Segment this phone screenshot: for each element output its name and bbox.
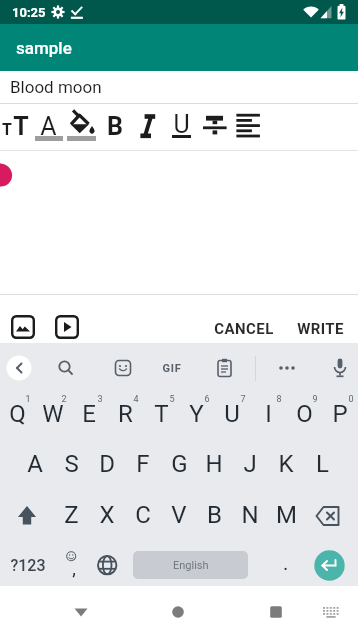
button[interactable] bbox=[236, 112, 261, 138]
button[interactable] bbox=[268, 604, 284, 620]
button[interactable]: English bbox=[133, 551, 248, 579]
button[interactable]: J bbox=[233, 441, 267, 487]
button[interactable]: G bbox=[162, 441, 196, 487]
staticText: A bbox=[27, 450, 43, 478]
staticText: 4 bbox=[133, 394, 139, 405]
staticText: 2 bbox=[61, 394, 67, 405]
staticText: A bbox=[40, 112, 57, 139]
staticText: GIF bbox=[162, 362, 182, 375]
staticText: 0 bbox=[348, 394, 354, 405]
button[interactable]: Z bbox=[54, 492, 88, 538]
button[interactable]: GIF bbox=[158, 359, 185, 377]
button[interactable] bbox=[9, 498, 45, 534]
button[interactable] bbox=[314, 550, 345, 581]
staticText: E bbox=[82, 400, 96, 428]
staticText: I bbox=[265, 400, 272, 428]
staticText: CANCEL bbox=[214, 320, 274, 338]
button[interactable]: W bbox=[36, 391, 70, 437]
staticText: sample bbox=[16, 38, 72, 58]
staticText: C bbox=[135, 501, 151, 529]
staticText: Q bbox=[9, 400, 26, 428]
button[interactable]: O bbox=[287, 391, 321, 437]
button[interactable] bbox=[6, 355, 32, 381]
button[interactable] bbox=[73, 605, 89, 619]
staticText: 7 bbox=[240, 394, 246, 405]
staticText: P bbox=[332, 400, 348, 428]
button[interactable]: I bbox=[251, 391, 285, 437]
button[interactable] bbox=[310, 500, 348, 532]
button[interactable] bbox=[97, 555, 118, 576]
button[interactable]: ?123 bbox=[8, 552, 48, 578]
button[interactable] bbox=[138, 112, 158, 139]
staticText: F bbox=[136, 450, 150, 478]
button[interactable]: U bbox=[215, 391, 249, 437]
staticText: Z bbox=[64, 501, 79, 529]
button[interactable]: V bbox=[162, 492, 196, 538]
button[interactable]: K bbox=[269, 441, 303, 487]
staticText: 9 bbox=[312, 394, 318, 405]
button[interactable]: N bbox=[233, 492, 267, 538]
button[interactable] bbox=[11, 315, 35, 339]
button[interactable]: L bbox=[305, 441, 339, 487]
staticText: D bbox=[99, 450, 115, 478]
button[interactable]: E bbox=[72, 391, 106, 437]
staticText: 6 bbox=[204, 394, 210, 405]
button[interactable] bbox=[322, 606, 340, 619]
staticText: Blood moon bbox=[10, 77, 102, 97]
staticText: G bbox=[171, 450, 188, 478]
button[interactable]: B bbox=[197, 492, 231, 538]
button[interactable] bbox=[202, 112, 228, 138]
button[interactable] bbox=[170, 604, 186, 620]
button[interactable]: P bbox=[323, 391, 357, 437]
button[interactable]: B bbox=[102, 112, 128, 139]
button[interactable] bbox=[114, 359, 132, 377]
button[interactable] bbox=[57, 359, 75, 377]
staticText: U bbox=[173, 110, 190, 137]
button[interactable]: . bbox=[275, 550, 295, 578]
staticText: B bbox=[107, 112, 123, 139]
staticText: O bbox=[296, 400, 313, 428]
button[interactable]: U bbox=[169, 110, 194, 137]
staticText: J bbox=[243, 450, 257, 478]
button[interactable]: A bbox=[35, 112, 61, 139]
button[interactable]: T bbox=[11, 112, 31, 139]
button[interactable]: H bbox=[197, 441, 231, 487]
staticText: WRITE bbox=[297, 320, 344, 338]
staticText: 1 bbox=[25, 394, 31, 405]
button[interactable]: D bbox=[90, 441, 124, 487]
staticText: T bbox=[2, 120, 12, 139]
staticText: 3 bbox=[97, 394, 103, 405]
button[interactable]: Q bbox=[0, 391, 34, 437]
button[interactable] bbox=[216, 358, 233, 378]
button[interactable]: CANCEL bbox=[203, 316, 285, 342]
staticText: 10:25 bbox=[12, 5, 46, 20]
staticText: H bbox=[205, 450, 223, 478]
staticText: 8 bbox=[276, 394, 282, 405]
button[interactable]: T bbox=[144, 391, 178, 437]
button[interactable]: T bbox=[0, 117, 13, 141]
staticText: Y bbox=[189, 400, 204, 428]
button[interactable] bbox=[55, 315, 79, 339]
button[interactable]: A bbox=[18, 441, 52, 487]
staticText: ?123 bbox=[10, 556, 46, 575]
button[interactable]: WRITE bbox=[290, 316, 350, 342]
button[interactable]: S bbox=[54, 441, 88, 487]
button[interactable]: X bbox=[90, 492, 124, 538]
staticText: . bbox=[283, 554, 288, 574]
button[interactable]: R bbox=[108, 391, 142, 437]
button[interactable]: M bbox=[269, 492, 303, 538]
button[interactable] bbox=[64, 106, 96, 136]
button[interactable] bbox=[277, 362, 297, 374]
staticText: U bbox=[224, 400, 240, 428]
button[interactable] bbox=[331, 357, 349, 379]
staticText: W bbox=[42, 400, 64, 428]
staticText: K bbox=[278, 450, 294, 478]
button[interactable]: , bbox=[64, 556, 84, 582]
button[interactable]: C bbox=[126, 492, 160, 538]
staticText: R bbox=[118, 400, 133, 428]
staticText: T bbox=[154, 400, 169, 428]
staticText: S bbox=[64, 450, 79, 478]
button[interactable]: Y bbox=[179, 391, 213, 437]
staticText: L bbox=[316, 450, 329, 478]
button[interactable]: F bbox=[126, 441, 160, 487]
